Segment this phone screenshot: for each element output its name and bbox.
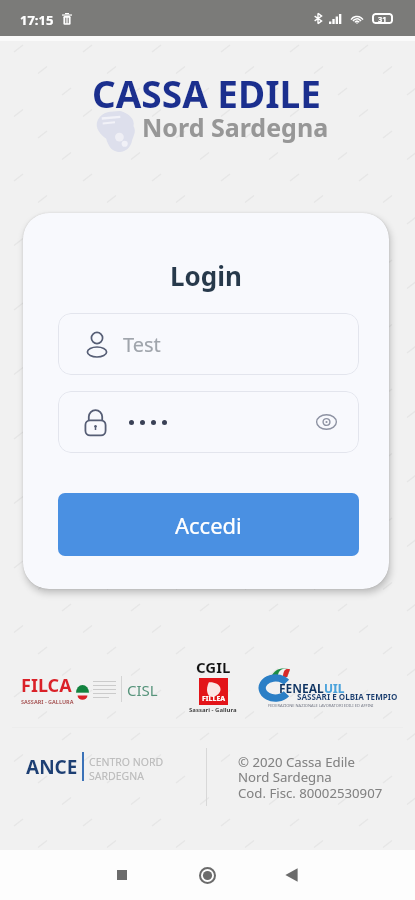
staticText: SARDEGNA (89, 769, 144, 783)
staticText: CGIL (196, 657, 231, 677)
staticText: 31 (378, 14, 387, 24)
button[interactable]: Accedi (58, 493, 359, 556)
staticText: Login (170, 258, 242, 293)
staticText: FENEAL (279, 680, 324, 696)
staticText: Test (123, 331, 161, 358)
staticText: Nord Sardegna (238, 768, 332, 786)
staticText: Nord Sardegna (142, 110, 329, 144)
button[interactable]: Home (185, 850, 230, 900)
staticText: SASSARI - GALLURA (21, 698, 74, 705)
button[interactable]: Show password (58, 391, 359, 453)
staticText: UIL (324, 680, 345, 696)
staticText: FEDERAZIONE NAZIONALE LAVORATORI EDILI E… (268, 703, 374, 708)
button[interactable]: Show password (313, 409, 339, 435)
staticText: Sassari - Gallura (189, 706, 237, 714)
staticText: CENTRO NORD (89, 755, 164, 769)
button[interactable]: Back (269, 850, 314, 900)
staticText: CASSA EDILE (92, 68, 321, 118)
staticText: CISL (127, 680, 158, 700)
button[interactable]: Test (58, 313, 359, 375)
staticText: FILLEA (202, 694, 226, 704)
staticText: © 2020 Cassa Edile (238, 753, 355, 771)
button[interactable]: Recent apps (99, 850, 144, 900)
staticText: Accedi (175, 510, 242, 540)
staticText: SASSARI E OLBIA TEMPIO (297, 691, 398, 702)
staticText: Cod. Fisc. 80002530907 (238, 784, 383, 802)
staticText: ANCE (26, 754, 78, 780)
staticText: 17:15 (20, 11, 54, 29)
staticText: FILCA (21, 673, 72, 698)
